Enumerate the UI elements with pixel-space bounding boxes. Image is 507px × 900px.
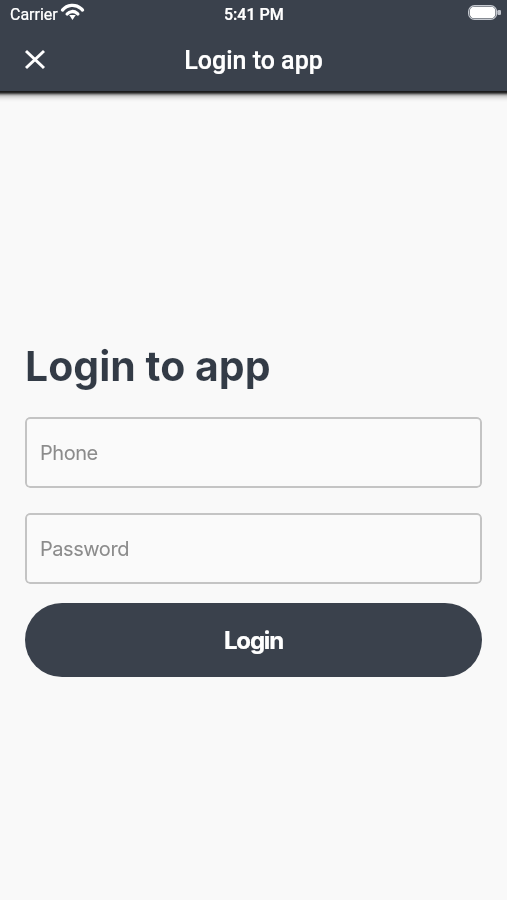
button[interactable]: Password — [25, 513, 482, 584]
button[interactable]: Login — [25, 603, 482, 677]
staticText: Login to app — [184, 46, 323, 75]
staticText: Phone — [40, 441, 98, 465]
button[interactable]: Close — [12, 36, 58, 82]
button[interactable]: Phone — [25, 417, 482, 488]
staticText: Login to app — [25, 341, 271, 391]
staticText: Login — [224, 626, 283, 655]
staticText: Carrier — [10, 5, 58, 24]
staticText: Password — [40, 537, 129, 561]
staticText: 5:41 PM — [224, 5, 284, 24]
